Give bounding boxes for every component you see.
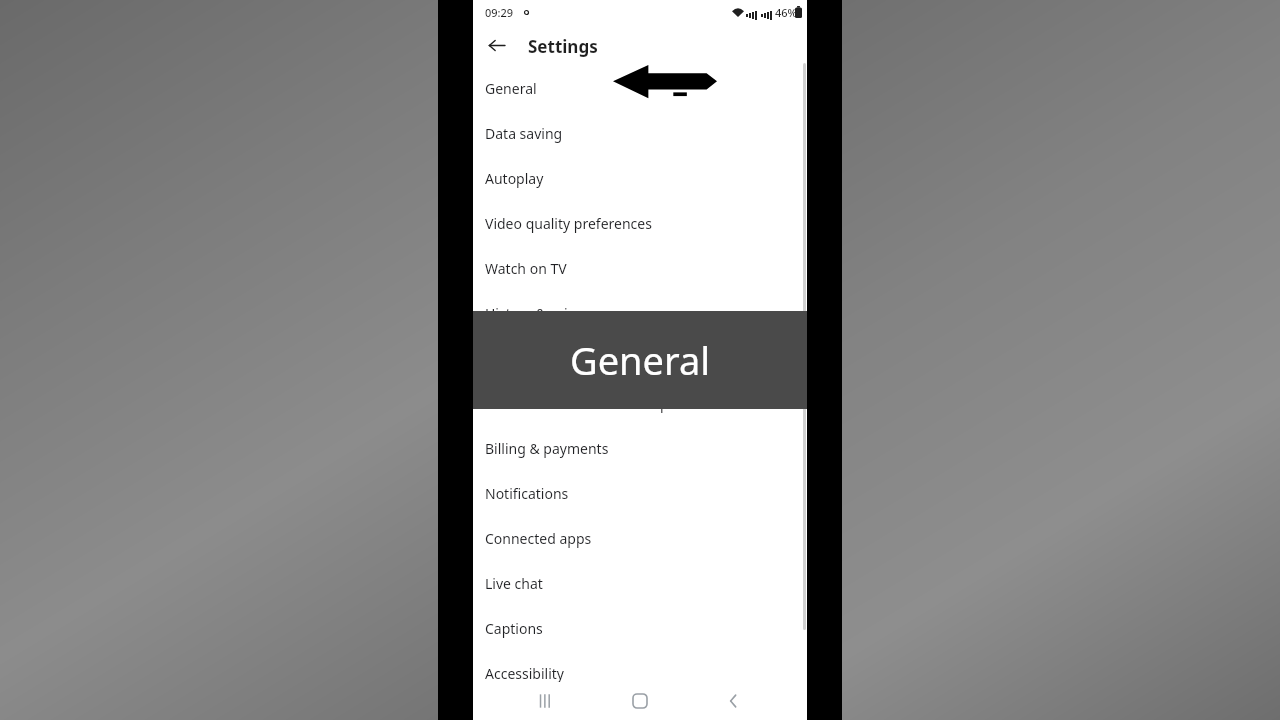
- staticText: Data saving: [485, 124, 563, 143]
- staticText: History & privacy: [485, 304, 597, 323]
- staticText: 46%: [775, 5, 797, 20]
- staticText: Live chat: [485, 574, 543, 593]
- button[interactable]: Autoplay: [473, 156, 807, 201]
- button[interactable]: Back: [482, 31, 510, 59]
- button[interactable]: Accessibility: [473, 651, 807, 696]
- button[interactable]: History & privacy: [473, 291, 807, 336]
- staticText: Purchases and memberships: [485, 394, 676, 413]
- button[interactable]: Billing & payments: [473, 426, 807, 471]
- staticText: General: [485, 79, 537, 98]
- staticText: Watch on TV: [485, 259, 567, 278]
- button[interactable]: Try new features: [473, 336, 807, 381]
- button[interactable]: Back: [714, 682, 754, 720]
- staticText: Connected apps: [485, 529, 592, 548]
- button[interactable]: Video quality preferences: [473, 201, 807, 246]
- button[interactable]: Watch on TV: [473, 246, 807, 291]
- staticText: Try new features: [485, 349, 594, 368]
- button[interactable]: Live chat: [473, 561, 807, 606]
- button[interactable]: General: [473, 66, 807, 111]
- staticText: Billing & payments: [485, 439, 609, 458]
- staticText: Settings: [528, 35, 598, 58]
- button[interactable]: Recents: [525, 682, 565, 720]
- button[interactable]: Connected apps: [473, 516, 807, 561]
- staticText: Video quality preferences: [485, 214, 652, 233]
- staticText: Accessibility: [485, 664, 564, 683]
- staticText: Captions: [485, 619, 543, 638]
- staticText: Autoplay: [485, 169, 544, 188]
- staticText: 09:29: [485, 5, 514, 20]
- button[interactable]: Captions: [473, 606, 807, 651]
- staticText: Notifications: [485, 484, 569, 503]
- button[interactable]: Home: [620, 682, 660, 720]
- button[interactable]: Notifications: [473, 471, 807, 516]
- button[interactable]: Data saving: [473, 111, 807, 156]
- button[interactable]: Purchases and memberships: [473, 381, 807, 426]
- staticText: General: [570, 334, 711, 386]
